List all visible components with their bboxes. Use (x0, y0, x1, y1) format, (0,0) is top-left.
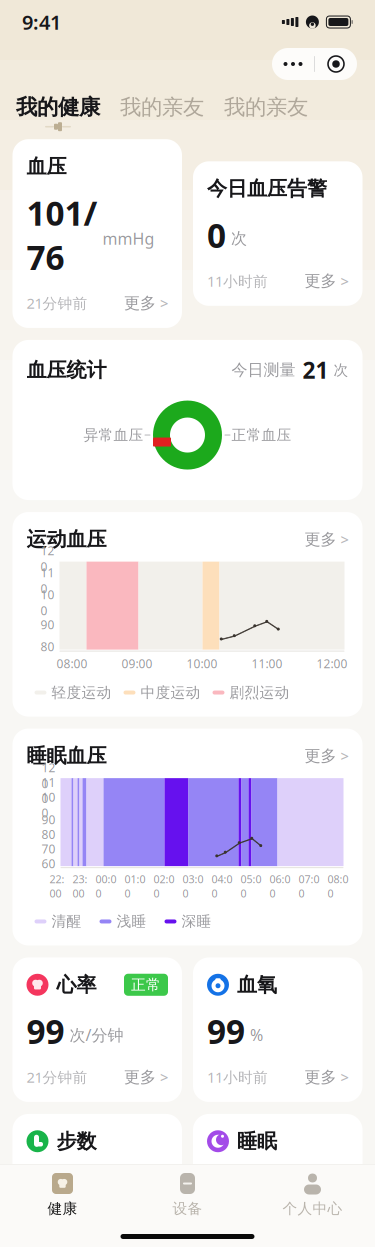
staticText: 21分钟前 (26, 293, 87, 313)
staticText: 健康 (47, 1199, 77, 1217)
staticText: 正常血压 (231, 426, 291, 444)
staticText: 9:41 (22, 9, 61, 35)
staticText: mmHg (102, 228, 154, 249)
staticText: 6 (268, 1165, 287, 1210)
button[interactable]: 今日血压告警 (193, 161, 362, 306)
staticText: 100 (40, 587, 54, 619)
button[interactable]: Record (315, 48, 357, 80)
staticText: 11小时前 (207, 1067, 268, 1087)
staticText: 05:00 (240, 872, 261, 900)
button[interactable]: 个人中心 (250, 1172, 375, 1217)
staticText: > (340, 746, 348, 766)
staticText: 60 (41, 856, 55, 872)
staticText: 异常血压 (83, 426, 143, 444)
staticText: 101/76 (26, 191, 97, 279)
button[interactable]: 健康 (0, 1172, 125, 1217)
staticText: 08:00 (327, 872, 348, 900)
button[interactable]: 我的亲友 (100, 94, 204, 131)
button[interactable]: 更多 (304, 1067, 348, 1087)
staticText: 80 (40, 639, 54, 654)
staticText: 2931 (26, 1165, 102, 1210)
staticText: > (340, 1067, 348, 1087)
staticText: 08:00 (56, 656, 87, 671)
staticText: 更多 (304, 271, 336, 291)
button[interactable]: 血压 (12, 139, 182, 328)
staticText: 70 (41, 841, 55, 857)
button[interactable]: 心率 (12, 957, 182, 1102)
button[interactable]: 更多 (124, 1067, 168, 1087)
staticText: 90 (40, 617, 54, 632)
staticText: 剧烈运动 (229, 684, 289, 702)
button[interactable]: 我的健康 (16, 94, 100, 131)
staticText: 今日测量 (231, 360, 295, 380)
staticText: 步数 (56, 1129, 96, 1154)
staticText: 23:00 (72, 872, 87, 900)
staticText: 个人中心 (282, 1199, 342, 1217)
staticText: % (250, 1024, 263, 1045)
staticText: 02:00 (153, 872, 174, 900)
staticText: 更多 (124, 293, 156, 313)
staticText: 清醒 (51, 912, 81, 930)
staticText: 血压统计 (26, 358, 106, 382)
staticText: 睡眠血压 (26, 744, 106, 768)
button[interactable]: 睡眠 (193, 1114, 362, 1247)
button[interactable]: 更多 (304, 746, 348, 766)
staticText: 120 (41, 760, 55, 792)
staticText: 我的健康 (16, 94, 100, 120)
staticText: 分钟 (292, 1181, 324, 1201)
button[interactable]: 设备 (125, 1172, 250, 1217)
staticText: 运动血压 (26, 527, 106, 552)
staticText: 00:00 (95, 872, 116, 900)
staticText: 110 (41, 774, 55, 806)
staticText: 今日血压告警 (207, 176, 327, 201)
staticText: 次/分钟 (69, 1024, 123, 1045)
button[interactable]: 步数 (12, 1114, 182, 1247)
staticText: > (340, 271, 348, 291)
staticText: 次 (231, 229, 247, 248)
button[interactable]: 更多 (124, 1224, 168, 1243)
staticText: 12:00 (316, 656, 347, 671)
button[interactable]: 更多 (304, 529, 348, 549)
staticText: 09:00 (121, 656, 152, 671)
button[interactable]: More options (272, 48, 314, 80)
staticText: 中度运动 (140, 684, 200, 702)
staticText: 轻度运动 (51, 684, 111, 702)
staticText: > (160, 293, 168, 313)
staticText: 我的亲友 (224, 94, 308, 120)
button[interactable]: 血氧 (193, 957, 362, 1102)
staticText: 深睡 (181, 912, 211, 930)
staticText: 03:00 (182, 872, 203, 900)
staticText: 07:00 (298, 872, 319, 900)
staticText: 血氧 (237, 972, 277, 997)
staticText: 120 (40, 543, 54, 575)
staticText: 99 (26, 1009, 64, 1053)
button[interactable]: 更多 (304, 271, 348, 291)
button[interactable]: 我的亲友 (204, 94, 308, 131)
staticText: 01:00 (124, 872, 145, 900)
staticText: 心率 (56, 972, 96, 997)
staticText: 设备 (172, 1199, 202, 1217)
staticText: > (160, 1067, 168, 1087)
staticText: 更多 (304, 746, 336, 766)
staticText: 睡眠 (237, 1129, 277, 1154)
staticText: 更多 (124, 1224, 156, 1243)
staticText: 11小时前 (207, 271, 268, 291)
staticText: > (340, 530, 348, 549)
staticText: 80 (41, 826, 55, 842)
staticText: 浅睡 (116, 912, 146, 930)
staticText: 22:00 (49, 872, 64, 900)
staticText: 110 (40, 565, 54, 597)
button[interactable]: 更多 (124, 293, 168, 313)
staticText: 90 (41, 812, 55, 828)
staticText: 06:00 (269, 872, 290, 900)
staticText: 次 (333, 361, 348, 379)
staticText: > (160, 1224, 168, 1243)
staticText: 更多 (304, 529, 336, 549)
staticText: 我的亲友 (120, 94, 204, 120)
